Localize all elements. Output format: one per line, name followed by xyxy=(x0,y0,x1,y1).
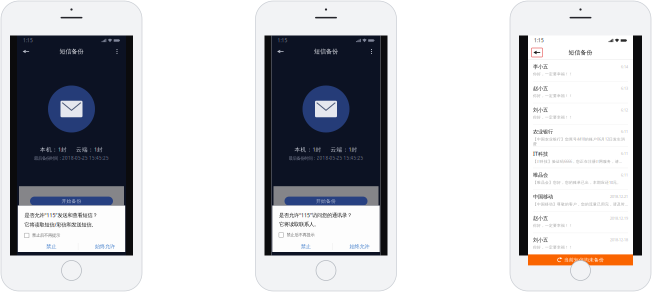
button[interactable]: 中国移动 xyxy=(528,190,633,211)
staticText: 【中国农业银行】您尾号4418的账户06月12日发生消费 xyxy=(533,137,625,146)
button[interactable]: 始终允许 xyxy=(333,241,386,252)
staticText: 禁止 xyxy=(301,243,311,250)
staticText: 唯品会 xyxy=(533,172,548,178)
button[interactable]: 赵小五 xyxy=(528,82,633,103)
staticText: 6:11 xyxy=(621,151,628,156)
staticText: 【唯品会】您好，您的账单已出，本期应还10元。 xyxy=(533,180,621,185)
button[interactable]: 赵小五 xyxy=(528,211,633,233)
staticText: 赵小五 xyxy=(533,215,548,222)
button[interactable]: 李小五 xyxy=(528,60,633,81)
staticText: 【IT科技】验证码6666，您正在注册IT网服务，请… xyxy=(533,159,622,164)
staticText: 农业银行 xyxy=(533,128,553,135)
staticText: 最后备份时间：2018-05-25 15:45:25 xyxy=(288,155,363,161)
staticText: 6:12 xyxy=(621,108,628,112)
staticText: 6:13 xyxy=(621,86,628,91)
staticText: 你好，一定要幸福！！ xyxy=(533,72,573,76)
staticText: 刘小五 xyxy=(533,107,548,113)
staticText: 云端：1封 xyxy=(76,145,103,153)
staticText: 它将读取短信/彩信和发送短信。 xyxy=(24,221,96,228)
button[interactable]: 当前短信均未备份 xyxy=(528,254,633,265)
button[interactable]: IT科技 xyxy=(528,146,633,168)
staticText: 2018-12-21 xyxy=(610,194,628,199)
button[interactable]: Back xyxy=(273,45,287,57)
staticText: 最后备份时间：2018-05-25 15:45:25 xyxy=(34,155,109,161)
staticText: 始终允许 xyxy=(95,243,115,250)
staticText: 它将读取联系人。 xyxy=(279,221,319,228)
button[interactable]: 刘小五 xyxy=(528,233,633,254)
button[interactable]: 农业银行 xyxy=(528,125,633,146)
button[interactable]: Back xyxy=(531,48,542,57)
staticText: 本机：1封 xyxy=(294,145,321,153)
staticText: IT科技 xyxy=(533,150,548,157)
staticText: 【中国移动】尊敬的客户，您的流量已用完，请及时… xyxy=(533,202,628,207)
staticText: 2018-12-19 xyxy=(610,216,628,221)
staticText: 是否允许“115”访问您的通讯录？ xyxy=(279,212,352,219)
staticText: 1:15 xyxy=(23,37,33,44)
button[interactable]: 始终允许 xyxy=(78,241,132,252)
staticText: 赵小五 xyxy=(533,85,548,92)
staticText: 禁止后不再提示 xyxy=(32,233,60,238)
button[interactable]: Back xyxy=(19,45,33,57)
staticText: 当前短信均未备份 xyxy=(564,257,604,263)
staticText: 6:11 xyxy=(621,129,628,134)
staticText: 始终允许 xyxy=(349,243,369,250)
button[interactable]: 唯品会 xyxy=(528,168,633,189)
button[interactable]: More options xyxy=(364,45,378,57)
staticText: 1:15 xyxy=(277,37,287,44)
button[interactable]: 禁止 xyxy=(24,241,78,252)
staticText: 你好，一定要幸福！！ xyxy=(533,93,573,98)
staticText: 中国移动 xyxy=(533,193,553,200)
staticText: 开始备份 xyxy=(61,198,81,204)
staticText: 短信备份 xyxy=(59,48,83,55)
staticText: 开始备份 xyxy=(316,198,336,204)
staticText: 你好，一定要幸福！！ xyxy=(533,223,573,228)
staticText: 李小五 xyxy=(533,63,548,70)
staticText: 本机：1封 xyxy=(40,145,67,153)
staticText: 云端：1封 xyxy=(330,145,357,153)
staticText: 禁止后不再提示 xyxy=(286,232,314,238)
button[interactable]: 禁止 xyxy=(279,241,333,252)
button[interactable]: 开始备份 xyxy=(284,197,367,206)
staticText: 禁止 xyxy=(46,243,56,250)
button[interactable]: 开始备份 xyxy=(30,197,113,206)
staticText: 6:11 xyxy=(621,173,628,177)
staticText: 你好，一定要幸福！！ xyxy=(533,115,573,120)
staticText: 6:14 xyxy=(621,64,628,69)
staticText: 刘小五 xyxy=(533,237,548,243)
button[interactable]: 刘小五 xyxy=(528,103,633,124)
staticText: 是否允许“115”发送和查看短信？ xyxy=(24,212,97,219)
staticText: 短信备份 xyxy=(568,49,592,56)
button[interactable]: More options xyxy=(110,45,124,57)
staticText: 2018-12-18 xyxy=(610,237,628,242)
staticText: 你好，一定要幸福！！ xyxy=(533,245,573,250)
staticText: 1:15 xyxy=(534,37,544,44)
staticText: 短信备份 xyxy=(314,48,338,55)
